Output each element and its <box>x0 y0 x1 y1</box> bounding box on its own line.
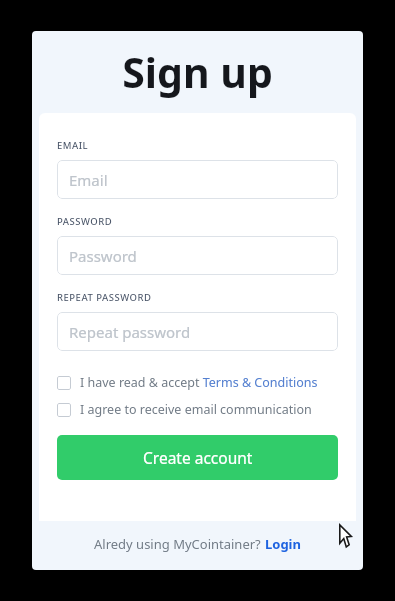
button[interactable]: Repeat password <box>57 312 338 351</box>
staticText: Create account <box>143 447 253 468</box>
button[interactable]: Email <box>57 160 338 199</box>
staticText: Login <box>265 535 301 553</box>
staticText: I agree to receive email communication <box>80 401 312 418</box>
button[interactable]: Create account <box>57 435 338 480</box>
staticText: Alredy using MyCointainer? <box>94 535 265 553</box>
staticText: Password <box>69 246 137 266</box>
button[interactable]: Login <box>265 535 301 553</box>
other: Checkbox <box>57 376 71 390</box>
staticText: Email <box>69 170 108 190</box>
button[interactable]: Checkbox <box>57 369 338 396</box>
staticText: Repeat password <box>69 322 191 342</box>
staticText: REPEAT PASSWORD <box>57 291 152 304</box>
staticText: EMAIL <box>57 139 89 152</box>
button[interactable]: Checkbox <box>57 396 338 423</box>
staticText: PASSWORD <box>57 215 113 228</box>
staticText: Sign up <box>122 44 273 100</box>
other: Checkbox <box>57 403 71 417</box>
button[interactable]: Password <box>57 236 338 275</box>
staticText: I have read & accept Terms & Conditions <box>80 374 318 391</box>
